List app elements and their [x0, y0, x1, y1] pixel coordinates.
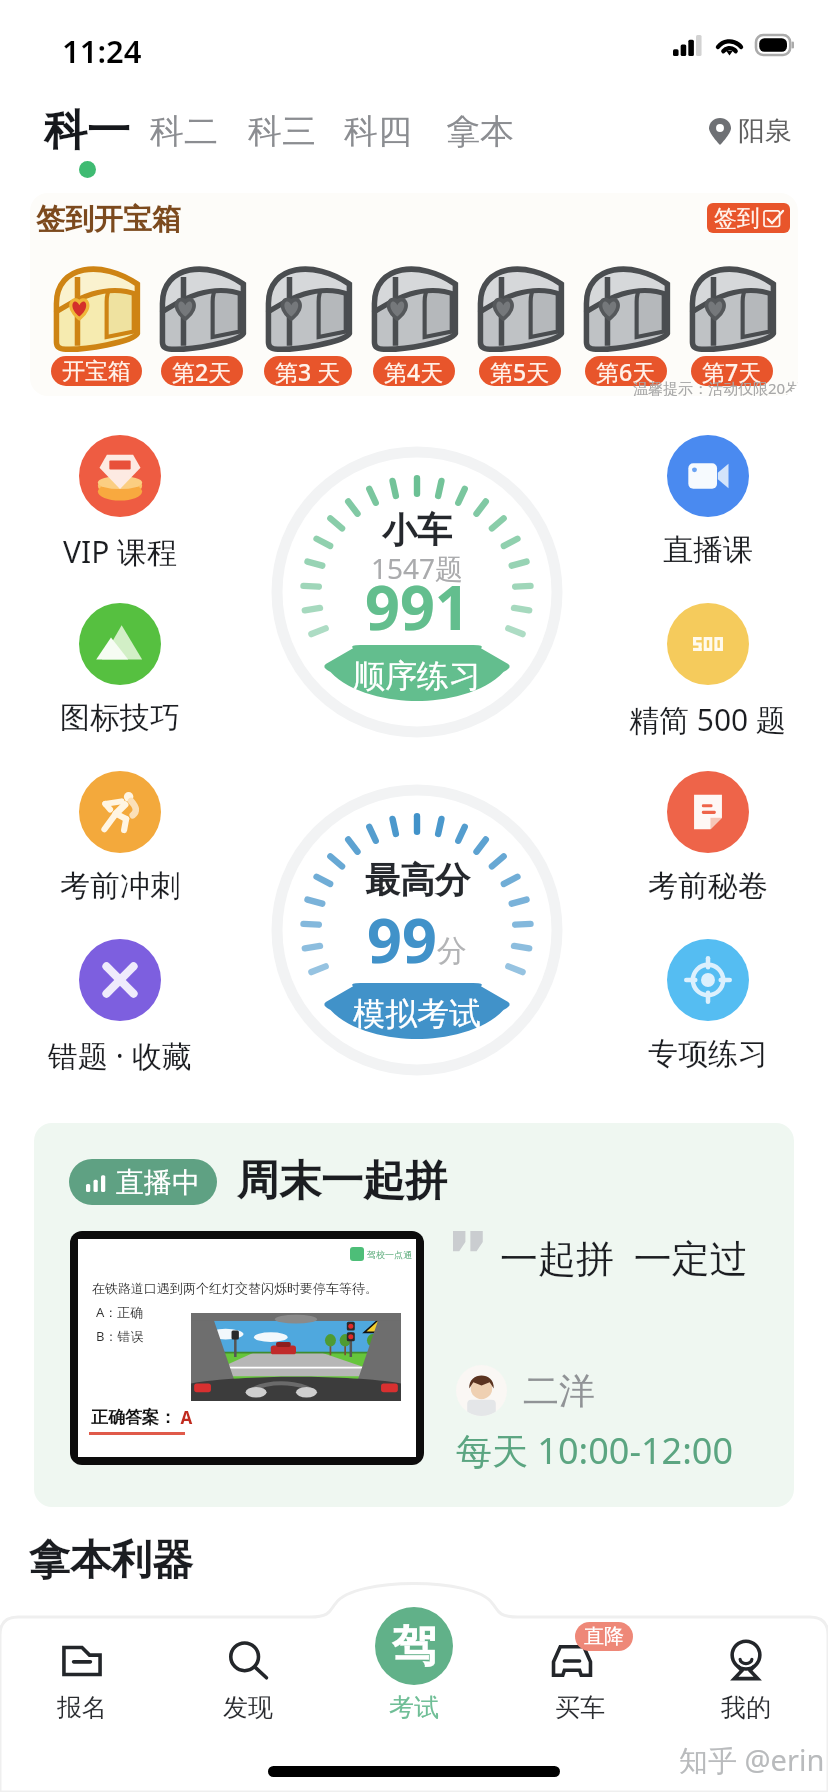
- button[interactable]: 最高分: [272, 785, 562, 1075]
- staticText: 第3 天: [275, 356, 341, 386]
- staticText: 周末一起拼: [237, 1155, 447, 1208]
- staticText: 错题 · 收藏: [48, 1035, 192, 1076]
- staticText: 开宝箱: [62, 357, 131, 386]
- staticText: 我的: [721, 1692, 771, 1723]
- staticText: A：正确: [96, 1303, 144, 1321]
- staticText: 直播中: [116, 1165, 200, 1200]
- staticText: 温馨提示：活动仅限20岁以上用户: [633, 378, 798, 396]
- button[interactable]: 第2天: [156, 263, 248, 386]
- staticText: 知乎 @erin: [679, 1740, 825, 1780]
- staticText: VIP 课程: [63, 531, 178, 572]
- button[interactable]: 专项练习: [588, 939, 828, 1073]
- button[interactable]: 精简 500 题: [588, 603, 828, 740]
- staticText: 1547题: [371, 549, 464, 587]
- staticText: 阳泉: [738, 114, 792, 148]
- button[interactable]: 第6天: [580, 263, 672, 386]
- staticText: 科三: [248, 110, 316, 153]
- staticText: 11:24: [62, 30, 142, 72]
- button[interactable]: VIP 课程: [0, 435, 240, 572]
- button[interactable]: 第7天: [686, 263, 778, 386]
- button[interactable]: 科二: [150, 110, 218, 173]
- staticText: 第4天: [384, 356, 444, 386]
- staticText: 拿本利器: [29, 1535, 193, 1587]
- button[interactable]: 考前秘卷: [588, 771, 828, 905]
- staticText: A: [176, 1406, 193, 1429]
- button[interactable]: 阳泉: [709, 114, 792, 148]
- staticText: 科一: [44, 104, 130, 158]
- staticText: 直播课: [663, 531, 753, 569]
- staticText: 科四: [344, 110, 412, 153]
- staticText: 顺序练习: [353, 656, 481, 696]
- staticText: 签到: [714, 204, 760, 233]
- button[interactable]: 考前冲刺: [0, 771, 240, 905]
- button[interactable]: 我的: [696, 1640, 796, 1723]
- button[interactable]: 科一: [44, 104, 130, 178]
- button[interactable]: 开宝箱: [50, 263, 142, 386]
- button[interactable]: 直播课: [588, 435, 828, 569]
- button[interactable]: 科三: [248, 110, 316, 173]
- button[interactable]: 直播中: [34, 1123, 794, 1507]
- button[interactable]: 小车: [272, 447, 562, 737]
- button[interactable]: 第4天: [368, 263, 460, 386]
- staticText: 99: [367, 898, 437, 981]
- staticText: 直降: [584, 1624, 624, 1649]
- staticText: 图标技巧: [60, 699, 180, 737]
- button[interactable]: 签到: [707, 203, 790, 233]
- button[interactable]: 错题 · 收藏: [0, 939, 240, 1076]
- button[interactable]: 第3 天: [262, 263, 354, 386]
- staticText: 第5天: [490, 356, 550, 386]
- staticText: 买车: [555, 1692, 605, 1723]
- staticText: B：错误: [96, 1327, 144, 1345]
- staticText: 991: [365, 565, 470, 648]
- staticText: 考试: [389, 1692, 439, 1723]
- staticText: 科二: [150, 110, 218, 153]
- button[interactable]: 第5天: [474, 263, 566, 386]
- button[interactable]: 拿本: [446, 110, 514, 173]
- staticText: 驾: [392, 1619, 436, 1674]
- staticText: 签到开宝箱: [36, 201, 181, 238]
- staticText: 每天 10:00-12:00: [456, 1426, 733, 1475]
- staticText: 一起拼 一定过: [500, 1231, 748, 1283]
- staticText: 第2天: [172, 356, 232, 386]
- staticText: 正确答案：: [91, 1407, 176, 1428]
- button[interactable]: 图标技巧: [0, 603, 240, 737]
- button[interactable]: 科四: [344, 110, 412, 173]
- staticText: 考前冲刺: [60, 867, 180, 905]
- staticText: 精简 500 题: [629, 699, 787, 740]
- staticText: 最高分: [365, 858, 470, 902]
- staticText: 拿本: [446, 110, 514, 153]
- staticText: 专项练习: [648, 1035, 768, 1073]
- staticText: 小车: [382, 508, 452, 552]
- button[interactable]: 报名: [32, 1640, 132, 1723]
- staticText: 驾校一点通: [367, 1249, 412, 1260]
- staticText: 第7天: [702, 356, 762, 386]
- button[interactable]: 签到开宝箱: [30, 193, 798, 396]
- staticText: 发现: [223, 1692, 273, 1723]
- staticText: 第6天: [596, 356, 656, 386]
- button[interactable]: 考试: [375, 1607, 453, 1685]
- button[interactable]: 直降: [530, 1640, 630, 1723]
- staticText: 模拟考试: [353, 994, 481, 1034]
- staticText: 考前秘卷: [648, 867, 768, 905]
- staticText: 分: [437, 932, 467, 970]
- button[interactable]: 发现: [198, 1640, 298, 1723]
- staticText: 报名: [57, 1692, 107, 1723]
- staticText: 二洋: [523, 1368, 595, 1413]
- staticText: 在铁路道口遇到两个红灯交替闪烁时要停车等待。: [92, 1280, 378, 1296]
